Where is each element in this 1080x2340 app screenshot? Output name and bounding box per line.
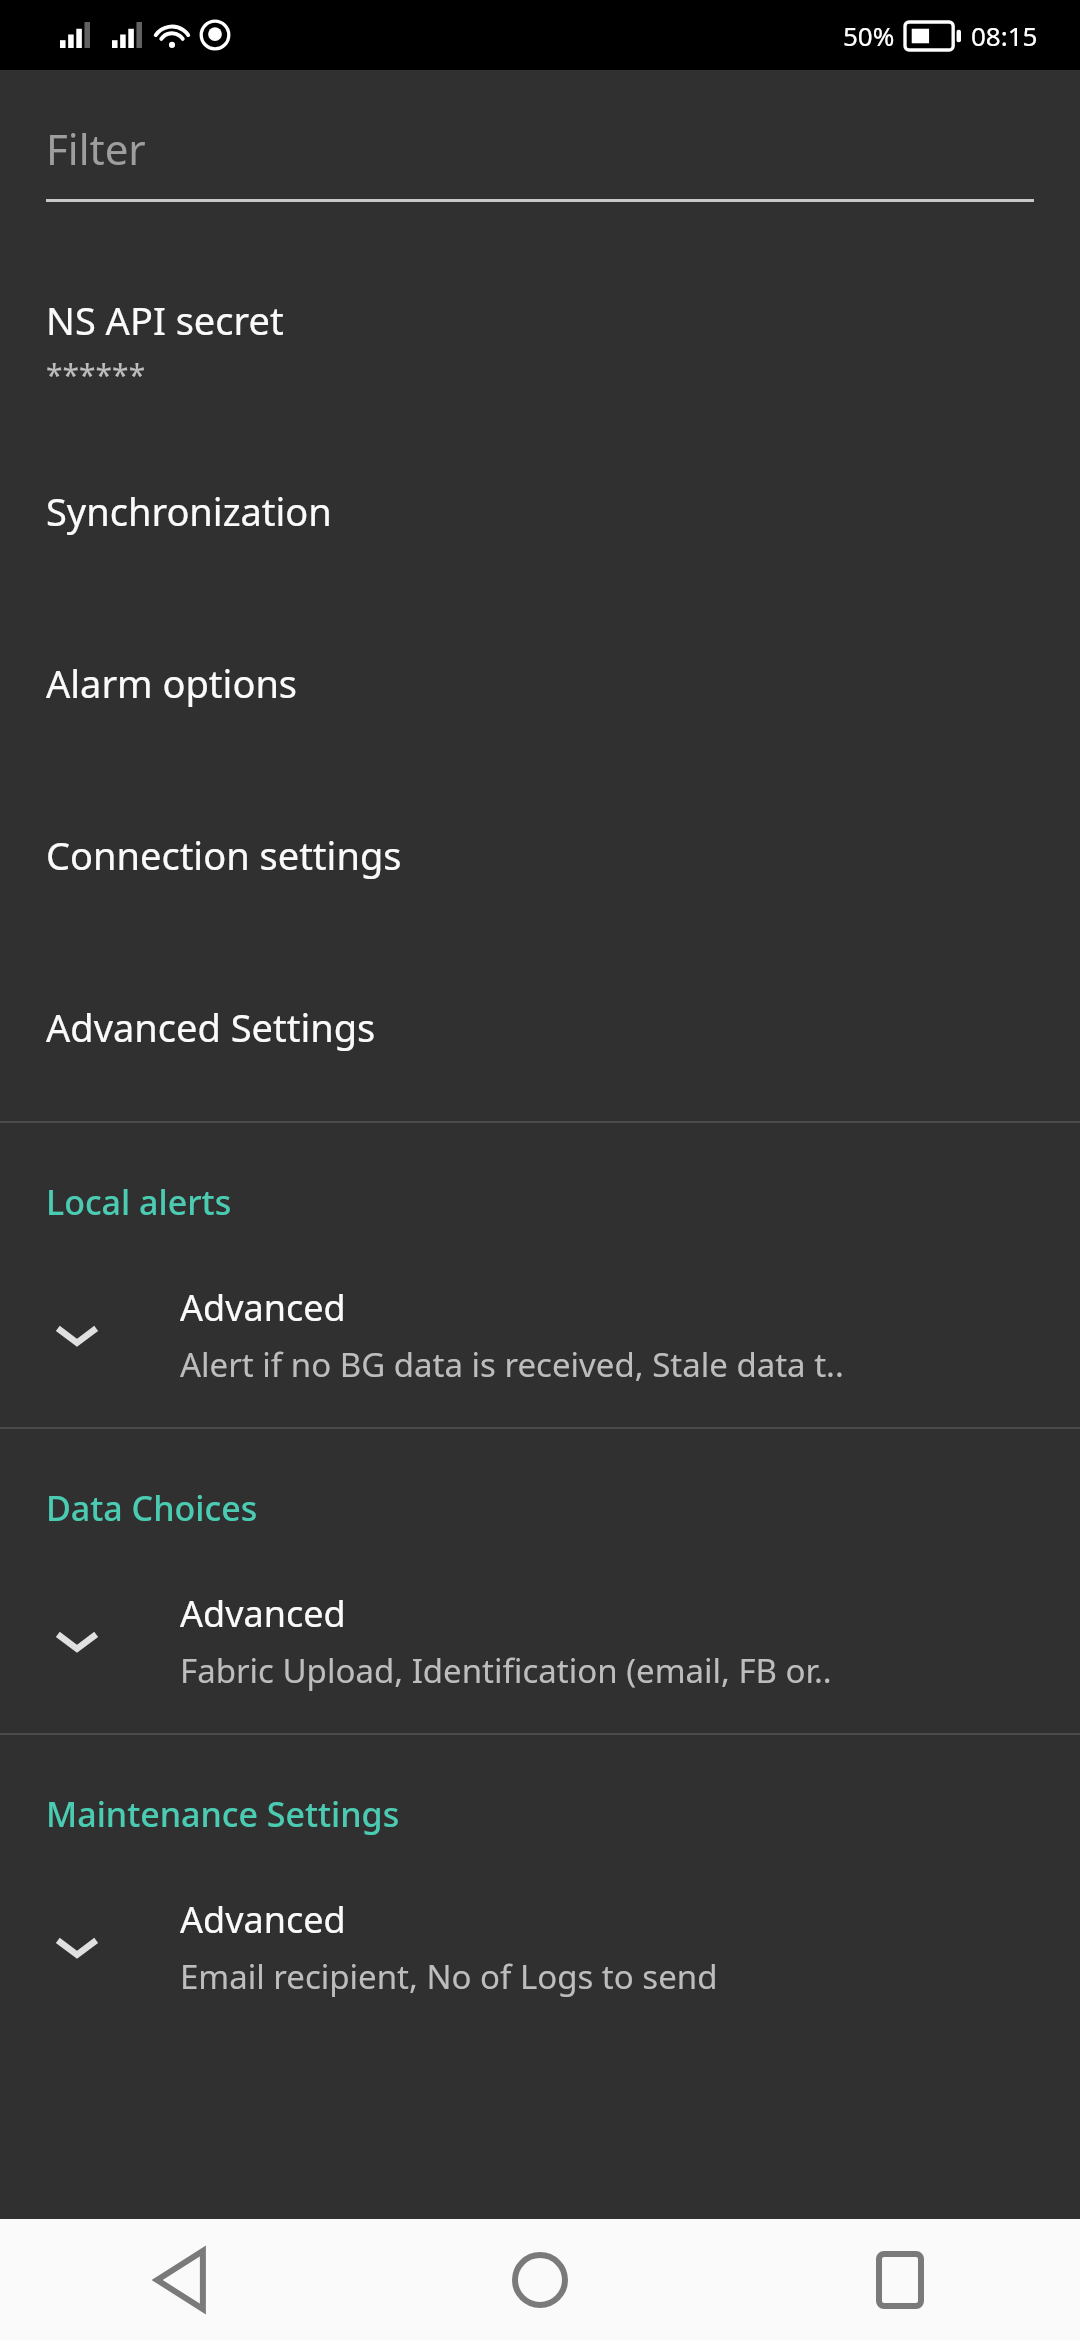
button[interactable]: Expand (0, 1889, 1080, 2039)
staticText: Advanced (180, 1589, 346, 1638)
button[interactable]: Recent apps (720, 2219, 1080, 2340)
staticText: Maintenance Settings (46, 1791, 400, 1837)
button[interactable]: Back (0, 2219, 360, 2340)
other: Expand (46, 1916, 108, 1978)
staticText: Advanced Settings (46, 1001, 376, 1053)
staticText: Alert if no BG data is received, Stale d… (180, 1342, 844, 1387)
button[interactable]: Synchronization (0, 485, 1080, 537)
staticText: Fabric Upload, Identification (email, FB… (180, 1648, 832, 1693)
staticText: Local alerts (46, 1179, 232, 1225)
staticText: Alarm options (46, 657, 298, 709)
button[interactable]: Filter (0, 70, 1080, 202)
staticText: Advanced (180, 1895, 346, 1944)
staticText: 50% (843, 18, 895, 53)
staticText: Synchronization (46, 485, 332, 537)
button[interactable]: Home (360, 2219, 720, 2340)
staticText: Data Choices (46, 1485, 258, 1531)
button[interactable]: Expand (0, 1583, 1080, 1733)
staticText: NS API secret (46, 294, 284, 346)
staticText: Connection settings (46, 829, 402, 881)
other: Expand (46, 1610, 108, 1672)
other: Expand (46, 1304, 108, 1366)
button[interactable]: Connection settings (0, 829, 1080, 881)
button[interactable]: Expand (0, 1277, 1080, 1427)
staticText: Filter (46, 120, 146, 177)
button[interactable]: Advanced Settings (0, 1001, 1080, 1053)
staticText: Email recipient, No of Logs to send (180, 1954, 718, 1999)
staticText: Advanced (180, 1283, 346, 1332)
button[interactable]: Alarm options (0, 657, 1080, 709)
staticText: 08:15 (971, 18, 1038, 53)
button[interactable]: NS API secret (0, 290, 1080, 399)
staticText: ****** (46, 354, 146, 395)
